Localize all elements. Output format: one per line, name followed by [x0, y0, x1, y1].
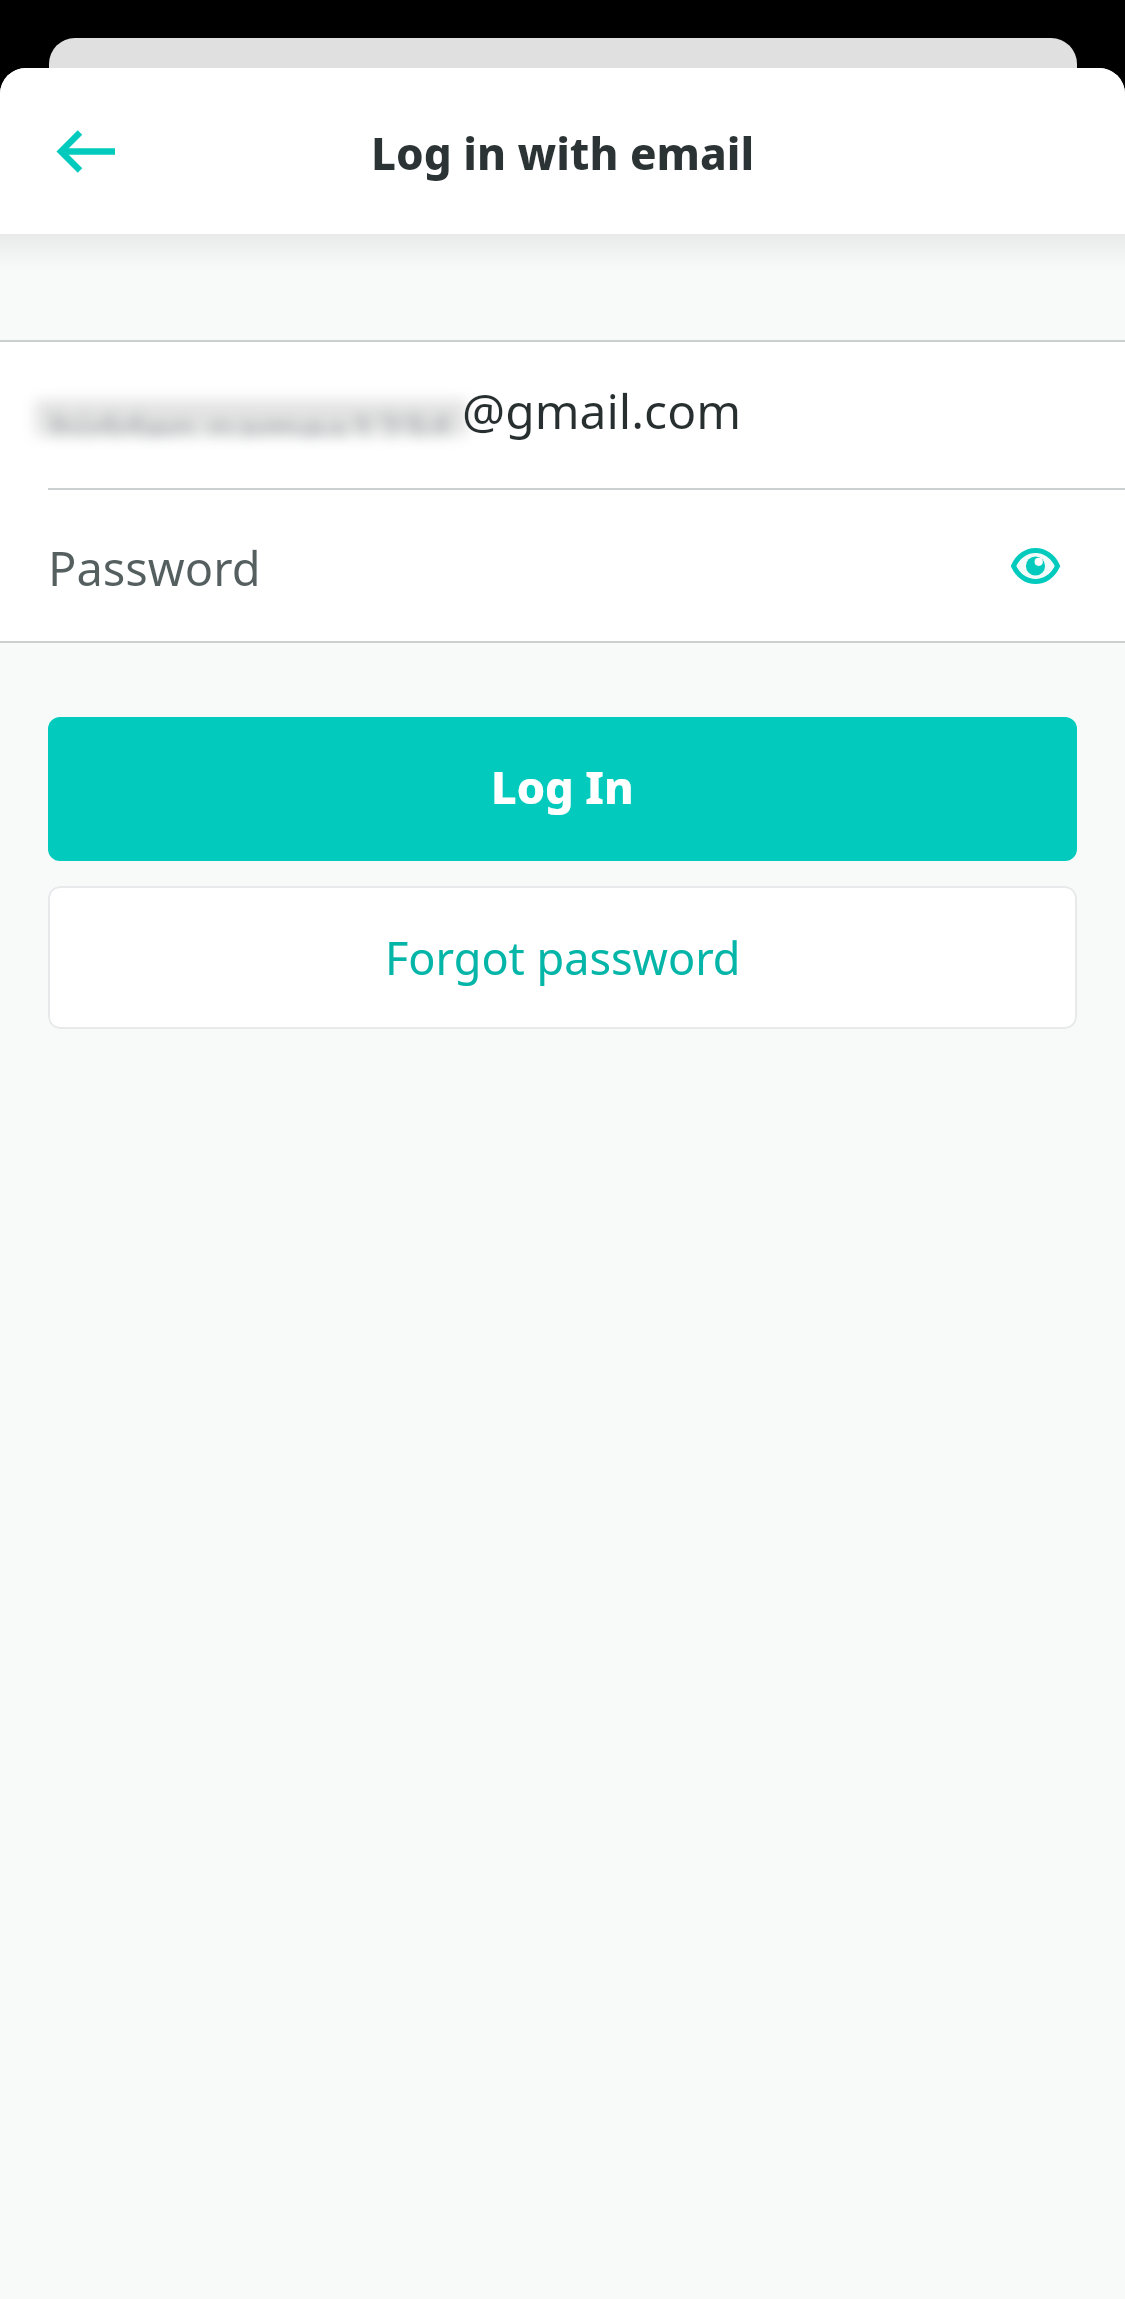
button[interactable]: Password [0, 490, 1125, 641]
staticText: Log In [491, 756, 634, 817]
button[interactable]: Show password [983, 514, 1087, 618]
staticText: @gmail.com [462, 378, 742, 443]
staticText: Password [48, 536, 261, 600]
button[interactable]: hidden.name+1234 [0, 342, 1125, 490]
staticText: Log in with email [371, 123, 755, 183]
button[interactable]: Forgot password [48, 886, 1077, 1029]
button[interactable]: Back [24, 91, 144, 211]
staticText: Forgot password [385, 927, 741, 988]
staticText: hidden.name+1234 [51, 400, 452, 436]
button[interactable]: Log In [48, 717, 1077, 861]
